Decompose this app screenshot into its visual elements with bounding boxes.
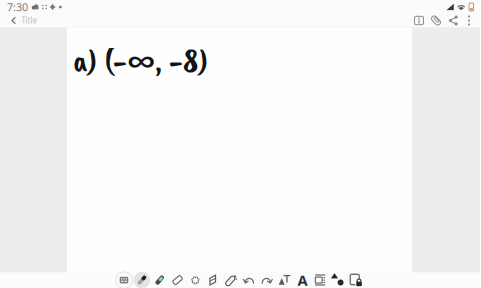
button[interactable]: Eraser: [169, 272, 186, 288]
button[interactable]: Page view: [414, 15, 424, 25]
staticText: 7:30: [7, 0, 28, 14]
button[interactable]: Undo: [240, 272, 258, 288]
button[interactable]: Ruler: [204, 272, 222, 288]
button[interactable]: Title: [0, 12, 37, 29]
button[interactable]: Redo: [258, 272, 276, 288]
button[interactable]: Layout: [311, 272, 329, 288]
button[interactable]: Keyboard: [115, 272, 133, 288]
button[interactable]: Pen: [133, 272, 151, 288]
button[interactable]: Share: [448, 15, 458, 25]
button[interactable]: Smart pen: [222, 272, 240, 288]
button[interactable]: More: [465, 15, 473, 25]
button[interactable]: Shapes: [329, 272, 347, 288]
button[interactable]: Highlighter: [151, 272, 169, 288]
button[interactable]: Insert text: [276, 272, 294, 288]
staticText: A: [297, 270, 307, 288]
button[interactable]: Lock page: [347, 272, 365, 288]
button[interactable]: Lasso: [186, 272, 204, 288]
staticText: a) (-∞, -8): [73, 40, 208, 82]
button[interactable]: Text style: [294, 272, 311, 288]
staticText: Title: [21, 15, 37, 26]
button[interactable]: Attach: [431, 15, 441, 25]
